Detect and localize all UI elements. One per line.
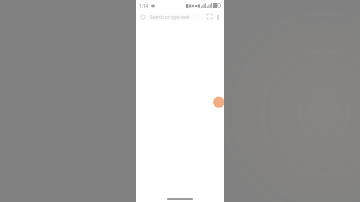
button[interactable]: Page info [138,11,222,22]
button[interactable]: Search or type web address [147,13,205,21]
staticText: 1:14 [139,3,149,9]
staticText: Search or type web address [150,14,202,20]
button[interactable]: More options [214,13,222,21]
button[interactable]: Page info [138,12,147,21]
button[interactable]: Scan [205,12,214,21]
button[interactable]: Home gesture handle [167,198,193,200]
